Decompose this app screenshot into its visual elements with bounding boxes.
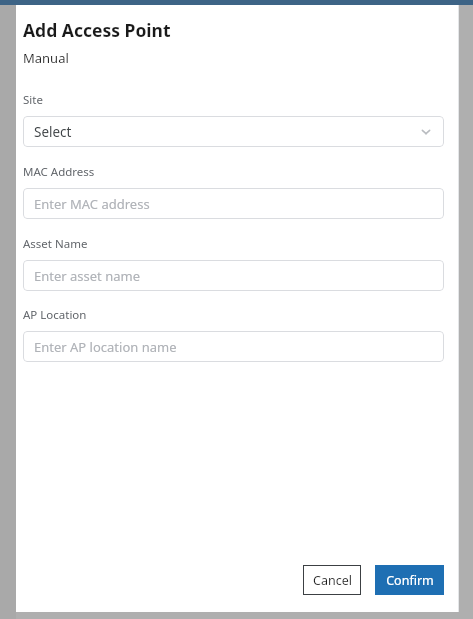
staticText: Manual (23, 49, 69, 67)
button[interactable]: Enter asset name (23, 260, 444, 291)
button[interactable]: Confirm (375, 565, 444, 595)
staticText: AP Location (23, 307, 87, 323)
staticText: Enter MAC address (34, 195, 150, 213)
button[interactable]: Cancel (303, 565, 361, 595)
staticText: MAC Address (23, 164, 95, 180)
staticText: Site (23, 92, 43, 108)
staticText: Confirm (386, 572, 434, 589)
button[interactable]: Enter MAC address (23, 188, 444, 219)
staticText: Enter asset name (34, 267, 141, 285)
button[interactable]: Enter AP location name (23, 331, 444, 362)
staticText: Add Access Point (23, 18, 171, 42)
staticText: Enter AP location name (34, 338, 177, 356)
staticText: Select (34, 123, 72, 141)
staticText: Cancel (313, 572, 352, 589)
button[interactable]: Select site (23, 116, 444, 147)
staticText: Asset Name (23, 236, 88, 252)
